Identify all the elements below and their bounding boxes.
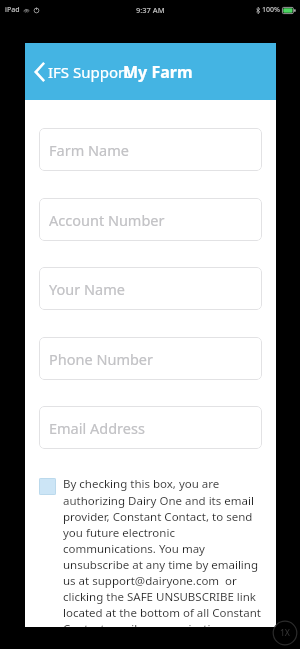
button[interactable]: Phone Number <box>39 337 262 380</box>
staticText: iPad <box>5 5 20 15</box>
staticText: Your Name <box>49 279 125 299</box>
staticText: 9:37 AM <box>136 5 165 15</box>
other: Back <box>35 63 44 81</box>
staticText: 1X <box>280 627 291 639</box>
staticText: By checking this box, you are authorizin… <box>63 476 262 627</box>
button[interactable]: Your Name <box>39 267 262 310</box>
staticText: Email Address <box>49 418 145 438</box>
staticText: Phone Number <box>49 349 154 369</box>
button[interactable]: Account Number <box>39 198 262 241</box>
button[interactable]: Email Address <box>39 406 262 449</box>
button[interactable]: Farm Name <box>39 128 262 171</box>
button[interactable]: Back <box>32 58 133 86</box>
staticText: IFS Support <box>48 62 130 82</box>
staticText: My Farm <box>123 61 193 83</box>
staticText: 100% <box>262 5 280 15</box>
button[interactable]: Authorize email communications checkbox <box>39 478 56 495</box>
staticText: Account Number <box>49 210 165 230</box>
button[interactable]: Scale 1X <box>272 620 298 646</box>
staticText: Farm Name <box>49 140 129 160</box>
